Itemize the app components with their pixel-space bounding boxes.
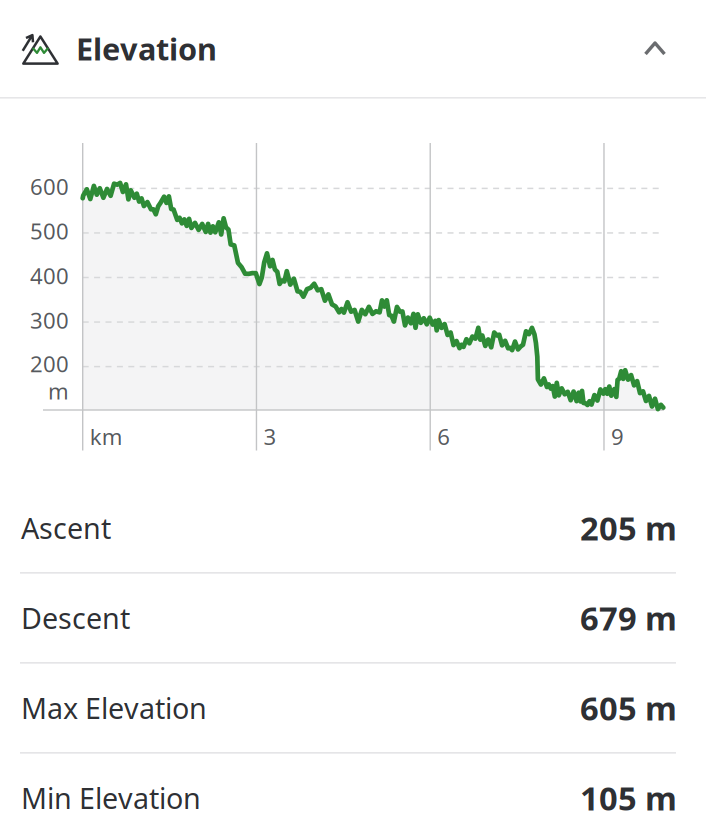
staticText: 400 [30, 260, 69, 291]
staticText: km [90, 421, 123, 451]
staticText: 679 m [580, 596, 677, 640]
staticText: 105 m [580, 776, 677, 820]
staticText: Min Elevation [21, 778, 201, 817]
button[interactable]: Min Elevation [0, 754, 706, 838]
staticText: 9 [611, 421, 624, 451]
staticText: 200 [30, 348, 69, 379]
staticText: 205 m [580, 506, 677, 550]
staticText: Descent [21, 598, 130, 637]
button[interactable]: Elevation [0, 0, 706, 97]
staticText: 3 [263, 421, 276, 451]
staticText: 6 [437, 421, 450, 451]
staticText: Max Elevation [21, 688, 207, 727]
button[interactable]: Max Elevation [0, 664, 706, 752]
staticText: 300 [30, 305, 69, 335]
staticText: 500 [30, 216, 69, 246]
button[interactable]: Descent [0, 574, 706, 662]
staticText: 600 [30, 171, 69, 201]
staticText: Elevation [76, 28, 217, 69]
staticText: Ascent [21, 508, 111, 547]
staticText: 605 m [580, 686, 677, 730]
staticText: m [48, 376, 69, 406]
button[interactable]: Ascent [0, 484, 706, 572]
